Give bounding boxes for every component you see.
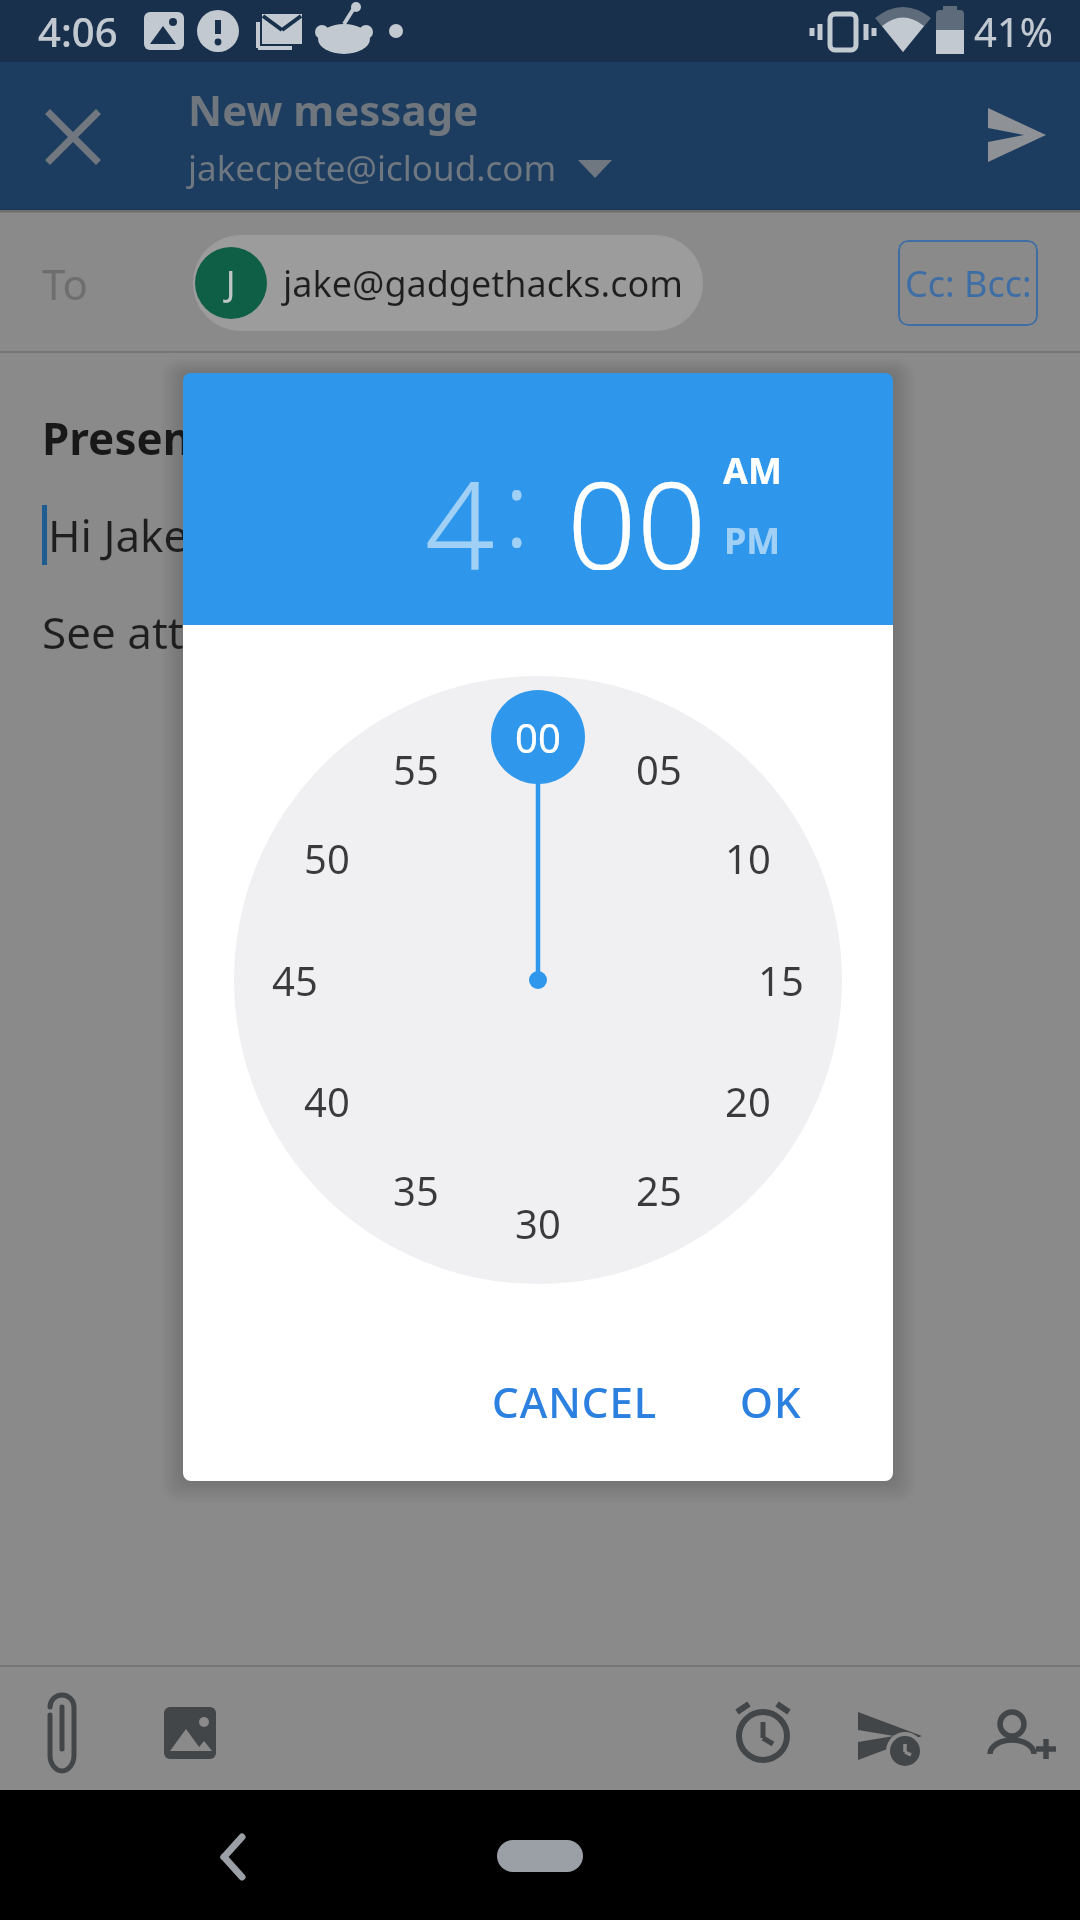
staticText: New message (188, 81, 479, 138)
button[interactable] (156, 1700, 226, 1770)
staticText: PM (724, 516, 781, 565)
staticText: J (226, 260, 236, 306)
button[interactable]: OK (716, 1368, 826, 1434)
button[interactable]: Cc: Bcc: (898, 240, 1038, 326)
button[interactable]: AM (712, 440, 792, 500)
button[interactable] (30, 1700, 100, 1770)
staticText: CANCEL (492, 1373, 658, 1430)
button[interactable] (982, 1700, 1052, 1770)
staticText: 55 (393, 742, 439, 796)
staticText: jake@gadgethacks.com (283, 259, 683, 308)
staticText: 00 (515, 710, 561, 764)
staticText: OK (740, 1373, 802, 1430)
staticText: 50 (304, 831, 350, 885)
staticText: 05 (636, 742, 682, 796)
staticText: 30 (515, 1196, 561, 1250)
staticText: 41% (974, 4, 1053, 58)
button[interactable] (193, 235, 703, 331)
staticText: 4 (425, 440, 495, 570)
staticText: Hi Jake, (48, 505, 201, 565)
staticText: Cc: Bcc: (905, 259, 1032, 308)
staticText: 4:06 (38, 4, 118, 58)
staticText: 35 (393, 1163, 439, 1217)
button[interactable] (200, 1824, 266, 1890)
staticText: To (42, 255, 88, 312)
staticText: 25 (636, 1163, 682, 1217)
staticText: 15 (758, 953, 804, 1007)
button[interactable] (856, 1700, 926, 1770)
staticText: 10 (725, 831, 771, 885)
staticText: AM (723, 446, 782, 495)
button[interactable]: PM (712, 510, 792, 570)
button[interactable] (40, 104, 106, 170)
staticText: jakecpete@icloud.com (188, 144, 557, 192)
button[interactable] (984, 104, 1050, 170)
staticText: 20 (725, 1074, 771, 1128)
staticText: See attached for the pres (42, 602, 561, 662)
staticText: 40 (304, 1074, 350, 1128)
button[interactable]: jakecpete@icloud.com (184, 138, 654, 198)
staticText: 00 (567, 440, 707, 570)
staticText: 45 (272, 953, 318, 1007)
staticText: Presentation slides (42, 408, 462, 468)
button[interactable] (497, 1840, 583, 1872)
button[interactable] (728, 1700, 798, 1770)
staticText: : (504, 436, 530, 566)
button[interactable]: CANCEL (490, 1368, 660, 1434)
